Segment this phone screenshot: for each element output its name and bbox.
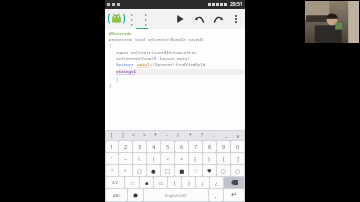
button[interactable]: ○ [217, 165, 230, 176]
staticText: ° [111, 167, 114, 174]
button[interactable]: 4 [147, 141, 160, 152]
button[interactable]: | [147, 153, 160, 164]
button[interactable]: 9 [217, 141, 230, 152]
button[interactable]: ° [106, 165, 118, 176]
button[interactable]: } [203, 153, 216, 164]
staticText: ▸ [145, 17, 148, 22]
button[interactable]: 5 [161, 141, 174, 152]
button[interactable]: English(UK) [144, 189, 208, 201]
staticText: strings1 [116, 69, 137, 75]
button[interactable]: { [189, 153, 202, 164]
button[interactable]: 6 [175, 141, 188, 152]
staticText: , [215, 192, 217, 199]
staticText: ] [237, 155, 239, 162]
staticText: 3 [138, 143, 142, 150]
button[interactable]: ~ [119, 153, 132, 164]
staticText: ● [151, 168, 156, 174]
button[interactable]: Enter [224, 189, 244, 201]
button[interactable]: 0 [231, 141, 244, 152]
staticText: > [180, 155, 184, 162]
button[interactable]: 7 [189, 141, 202, 152]
button[interactable]: > [139, 131, 150, 140]
staticText: ¿ [215, 179, 218, 186]
staticText: ♡ [193, 168, 198, 174]
button[interactable]: : [208, 131, 220, 140]
button[interactable]: More options [229, 12, 242, 25]
staticText: ¡ [202, 179, 204, 186]
staticText: 2/2 [112, 180, 119, 185]
button[interactable]: ▫ [154, 177, 167, 188]
staticText: 20:51 [230, 1, 243, 8]
button[interactable]: ? [196, 131, 208, 140]
button[interactable]: 2/2 [106, 177, 124, 188]
button[interactable]: 1 [106, 141, 118, 152]
staticText: =(Spinner)findViewById [150, 62, 206, 68]
button[interactable]: ▪ [140, 177, 153, 188]
staticText: | [152, 155, 156, 162]
button[interactable]: 3 [133, 141, 146, 152]
staticText: ABC [113, 193, 121, 198]
staticText: } [109, 83, 112, 89]
button[interactable]: Webcam overlay [305, 1, 359, 43]
button[interactable]: ABC [106, 189, 127, 201]
button[interactable]: > [175, 153, 188, 164]
staticText: < [132, 132, 135, 139]
button[interactable]: < [161, 153, 174, 164]
staticText: - [166, 132, 168, 139]
button[interactable]: ● [147, 165, 160, 176]
button[interactable]: - [161, 131, 172, 140]
button[interactable]: Run [172, 11, 187, 26]
staticText: 6 [180, 143, 184, 150]
button[interactable]: Undo [192, 12, 206, 26]
button[interactable]: < [128, 131, 139, 140]
button[interactable]: ) [182, 177, 195, 188]
button[interactable]: ] [117, 131, 128, 140]
button[interactable]: □ [161, 165, 174, 176]
button[interactable]: ∨ [232, 131, 244, 140]
button[interactable]: • [119, 165, 132, 176]
staticText: > [143, 132, 146, 139]
staticText: ▸ [131, 12, 134, 17]
button[interactable]: 2 [119, 141, 132, 152]
button[interactable]: _ [220, 131, 232, 140]
button[interactable]: ¡ [196, 177, 209, 188]
button[interactable]: ¿ [210, 177, 223, 188]
button[interactable]: ○ [133, 165, 146, 176]
button[interactable]: \ [133, 153, 146, 164]
button[interactable]: [ [106, 131, 117, 140]
staticText: ▪ [145, 180, 149, 186]
button[interactable]: Redo [211, 12, 225, 26]
button[interactable]: ♡ [189, 165, 202, 176]
button[interactable]: Device [143, 12, 150, 26]
button[interactable]: Module [129, 12, 136, 26]
staticText: protected [109, 37, 135, 43]
button[interactable]: , [209, 189, 223, 201]
staticText: 9 [222, 143, 226, 150]
staticText: [ [111, 132, 113, 139]
staticText: ♥ [207, 168, 212, 174]
button[interactable]: Backspace [224, 177, 244, 188]
staticText: ' [111, 155, 113, 162]
button[interactable]: * [184, 131, 196, 140]
button[interactable]: ♥ [203, 165, 216, 176]
staticText: { [109, 43, 112, 49]
button[interactable]: Voice input [128, 189, 143, 201]
button[interactable]: Project [108, 10, 125, 27]
staticText: ] [122, 132, 124, 139]
staticText: ( [174, 179, 176, 186]
staticText: onCreate(Bundle savedI [148, 37, 204, 43]
button[interactable]: [ [217, 153, 230, 164]
button[interactable]: / [172, 131, 184, 140]
staticText: .layout.main); [157, 56, 193, 62]
button[interactable]: ○ [231, 165, 244, 176]
staticText: • [124, 167, 127, 174]
button[interactable]: ' [106, 153, 118, 164]
staticText: 2 [124, 143, 128, 150]
button[interactable]: 8 [203, 141, 216, 152]
button[interactable]: ] [231, 153, 244, 164]
button[interactable]: ☆ [125, 177, 139, 188]
button[interactable]: ( [168, 177, 181, 188]
button[interactable]: * [150, 131, 161, 140]
staticText: ▸ [131, 22, 134, 26]
button[interactable]: ■ [175, 165, 188, 176]
